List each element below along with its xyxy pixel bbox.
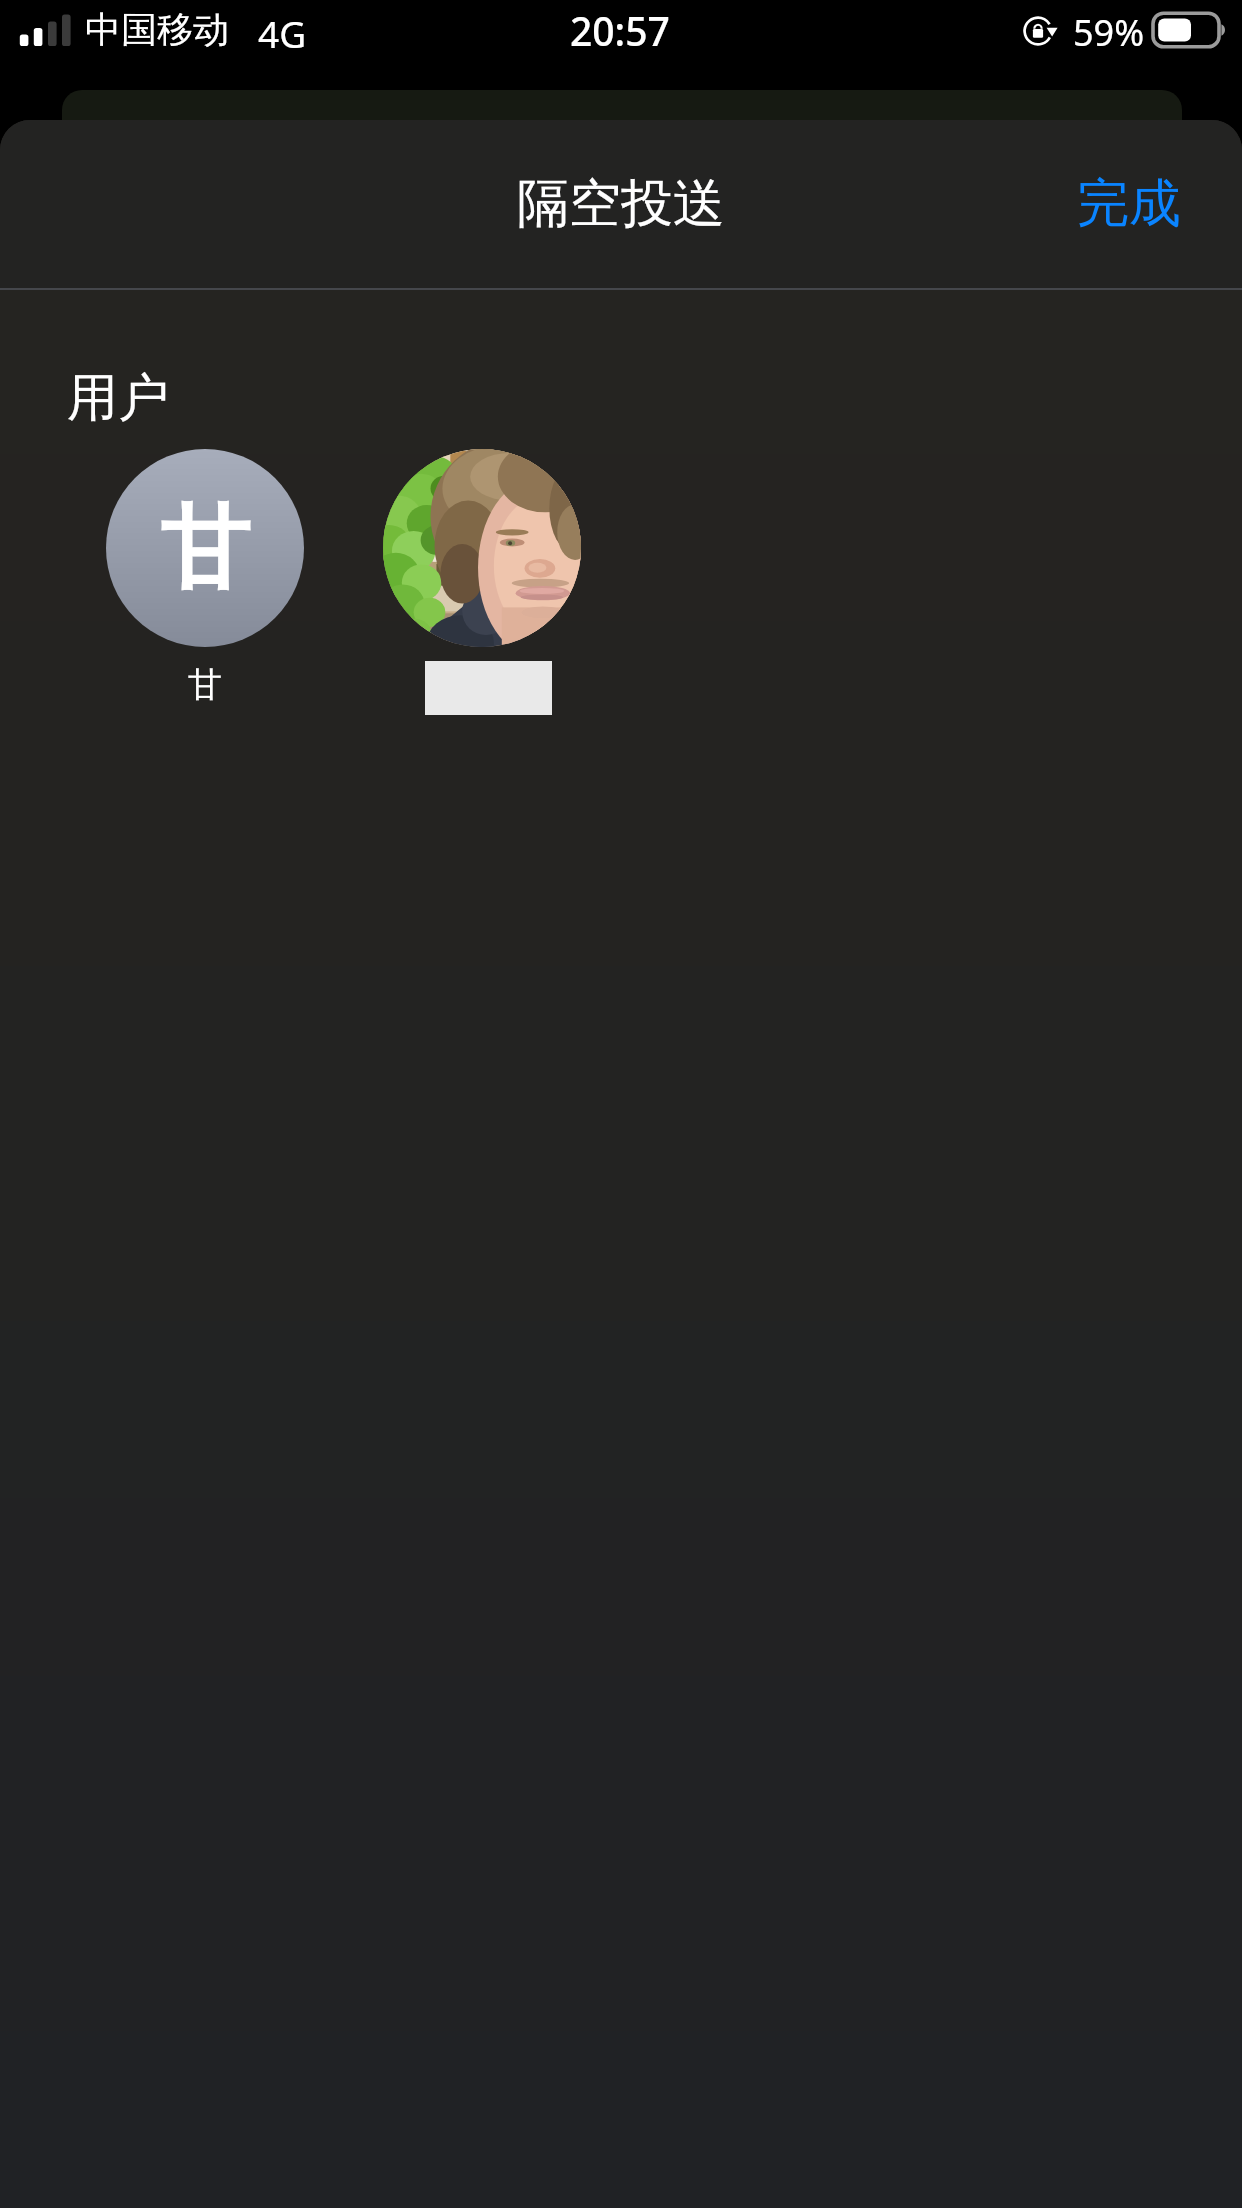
other: Battery 59 percent xyxy=(1153,11,1235,51)
other: Rotation lock xyxy=(1018,11,1062,51)
button[interactable]: 甘 xyxy=(106,449,304,706)
button[interactable]: 完成 xyxy=(1055,153,1203,255)
staticText: 59% xyxy=(1073,8,1145,57)
staticText: 甘 xyxy=(160,492,250,605)
staticText: 完成 xyxy=(1077,171,1181,237)
staticText: 隔空投送 xyxy=(517,171,725,237)
staticText: 20:57 xyxy=(570,4,670,57)
staticText: 甘 xyxy=(188,663,222,706)
button[interactable] xyxy=(383,449,581,715)
other: Cellular signal xyxy=(18,0,98,46)
staticText: 4G xyxy=(258,8,307,58)
staticText: 用户 xyxy=(67,366,169,430)
staticText: 中国移动 xyxy=(85,7,229,52)
